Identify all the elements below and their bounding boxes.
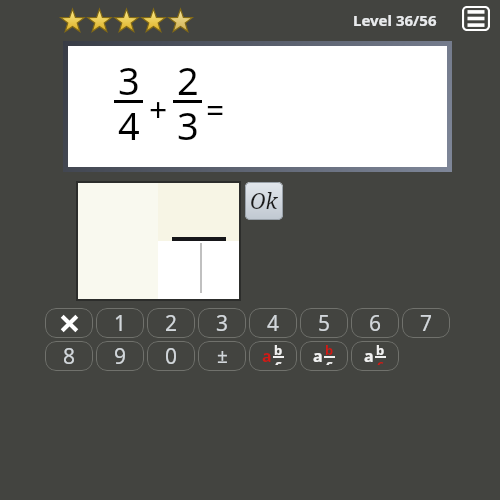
- staticText: +: [149, 88, 168, 132]
- staticText: 2: [177, 54, 199, 106]
- staticText: 3: [177, 99, 199, 151]
- button[interactable]: ±: [198, 341, 246, 371]
- staticText: Level 36/56: [353, 10, 437, 30]
- staticText: 8: [63, 342, 76, 371]
- button[interactable]: 9: [96, 341, 144, 371]
- button[interactable]: Ok: [245, 182, 283, 220]
- staticText: Ok: [250, 187, 278, 216]
- button[interactable]: Menu: [462, 6, 490, 31]
- staticText: ±: [217, 343, 228, 369]
- staticText: 6: [369, 309, 382, 338]
- staticText: 3: [118, 54, 140, 106]
- button[interactable]: Whole number part: [249, 341, 297, 371]
- staticText: a: [262, 345, 272, 367]
- button[interactable]: 5: [300, 308, 348, 338]
- staticText: 4: [267, 309, 280, 338]
- staticText: b: [325, 341, 334, 359]
- staticText: 1: [114, 309, 127, 338]
- staticText: b: [274, 341, 283, 359]
- button[interactable]: Denominator: [351, 341, 399, 371]
- button[interactable]: 8: [45, 341, 93, 371]
- staticText: c: [377, 355, 384, 365]
- button[interactable]: [78, 183, 239, 299]
- staticText: c: [326, 355, 333, 365]
- button[interactable]: 0: [147, 341, 195, 371]
- button[interactable]: Clear: [45, 308, 93, 338]
- staticText: a: [364, 345, 374, 367]
- staticText: 0: [165, 342, 178, 371]
- staticText: =: [206, 88, 225, 132]
- staticText: 7: [420, 309, 433, 338]
- button[interactable]: 3: [198, 308, 246, 338]
- button[interactable]: Numerator: [300, 341, 348, 371]
- button[interactable]: 3: [68, 46, 447, 167]
- staticText: a: [313, 345, 323, 367]
- staticText: c: [275, 355, 282, 365]
- staticText: 4: [118, 99, 140, 151]
- staticText: 2: [165, 309, 178, 338]
- staticText: 5: [318, 309, 331, 338]
- button[interactable]: 2: [147, 308, 195, 338]
- staticText: 9: [114, 342, 127, 371]
- button[interactable]: 1: [96, 308, 144, 338]
- button[interactable]: 6: [351, 308, 399, 338]
- staticText: 3: [216, 309, 229, 338]
- staticText: b: [376, 341, 385, 359]
- button[interactable]: 7: [402, 308, 450, 338]
- button[interactable]: 4: [249, 308, 297, 338]
